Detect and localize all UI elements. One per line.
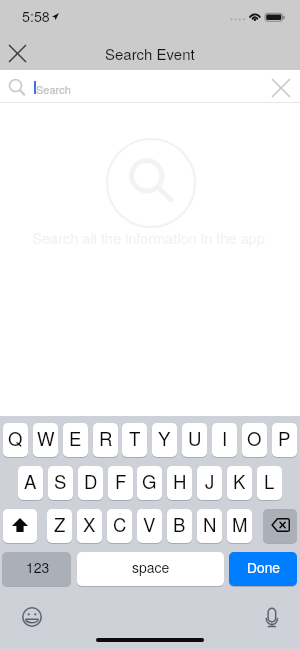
staticText: O — [247, 425, 262, 452]
staticText: N — [203, 511, 217, 538]
button[interactable]: E — [63, 423, 88, 457]
button[interactable]: J — [197, 466, 222, 500]
button[interactable]: Y — [152, 423, 177, 457]
staticText: Search — [36, 81, 71, 97]
staticText: R — [99, 425, 113, 452]
button[interactable]: X — [77, 509, 102, 543]
button[interactable]: B — [167, 509, 192, 543]
button[interactable]: Dictation — [265, 606, 281, 629]
button[interactable]: O — [242, 423, 267, 457]
button[interactable]: Emoji keyboard — [22, 607, 42, 627]
button[interactable]: H — [167, 466, 192, 500]
staticText: E — [69, 425, 82, 452]
button[interactable]: U — [182, 423, 207, 457]
staticText: X — [83, 511, 96, 538]
button[interactable]: K — [227, 466, 252, 500]
button[interactable]: space — [77, 552, 224, 586]
staticText: M — [232, 511, 248, 538]
staticText: J — [205, 468, 215, 495]
button[interactable]: D — [78, 466, 103, 500]
button[interactable]: M — [227, 509, 252, 543]
button[interactable]: Backspace — [263, 509, 297, 543]
button[interactable]: P — [272, 423, 297, 457]
staticText: space — [132, 557, 170, 577]
staticText: Q — [8, 425, 23, 452]
button[interactable]: Search — [0, 70, 300, 103]
staticText: V — [143, 511, 156, 538]
staticText: T — [129, 425, 141, 452]
button[interactable]: N — [197, 509, 222, 543]
staticText: Y — [158, 425, 171, 452]
button[interactable]: Z — [47, 509, 72, 543]
button[interactable]: Clear search — [265, 71, 297, 104]
staticText: B — [173, 511, 186, 538]
staticText: A — [24, 468, 37, 495]
button[interactable]: Close — [0, 36, 34, 70]
button[interactable]: A — [18, 466, 43, 500]
button[interactable]: F — [108, 466, 133, 500]
staticText: Z — [54, 511, 66, 538]
button[interactable]: C — [107, 509, 132, 543]
button[interactable]: G — [137, 466, 162, 500]
staticText: F — [115, 468, 127, 495]
staticText: Search all the information in the app — [32, 227, 265, 248]
button[interactable]: R — [93, 423, 118, 457]
staticText: Search Event — [105, 43, 195, 64]
staticText: H — [173, 468, 187, 495]
staticText: 5:58 — [22, 6, 50, 26]
staticText: D — [84, 468, 98, 495]
button[interactable]: 123 — [2, 552, 71, 586]
button[interactable]: S — [48, 466, 73, 500]
staticText: C — [113, 511, 127, 538]
staticText: L — [264, 468, 275, 495]
staticText: 123 — [26, 557, 50, 577]
staticText: I — [222, 425, 228, 452]
button[interactable]: L — [257, 466, 282, 500]
staticText: W — [37, 425, 55, 452]
button[interactable]: V — [137, 509, 162, 543]
button[interactable]: Shift — [3, 509, 37, 543]
button[interactable]: T — [122, 423, 147, 457]
staticText: P — [278, 425, 291, 452]
button[interactable]: Done — [229, 552, 297, 586]
button[interactable]: I — [212, 423, 237, 457]
button[interactable]: Q — [3, 423, 28, 457]
staticText: S — [54, 468, 67, 495]
button[interactable]: W — [33, 423, 58, 457]
staticText: G — [142, 468, 157, 495]
staticText: Done — [247, 557, 280, 577]
staticText: U — [188, 425, 202, 452]
staticText: K — [233, 468, 246, 495]
